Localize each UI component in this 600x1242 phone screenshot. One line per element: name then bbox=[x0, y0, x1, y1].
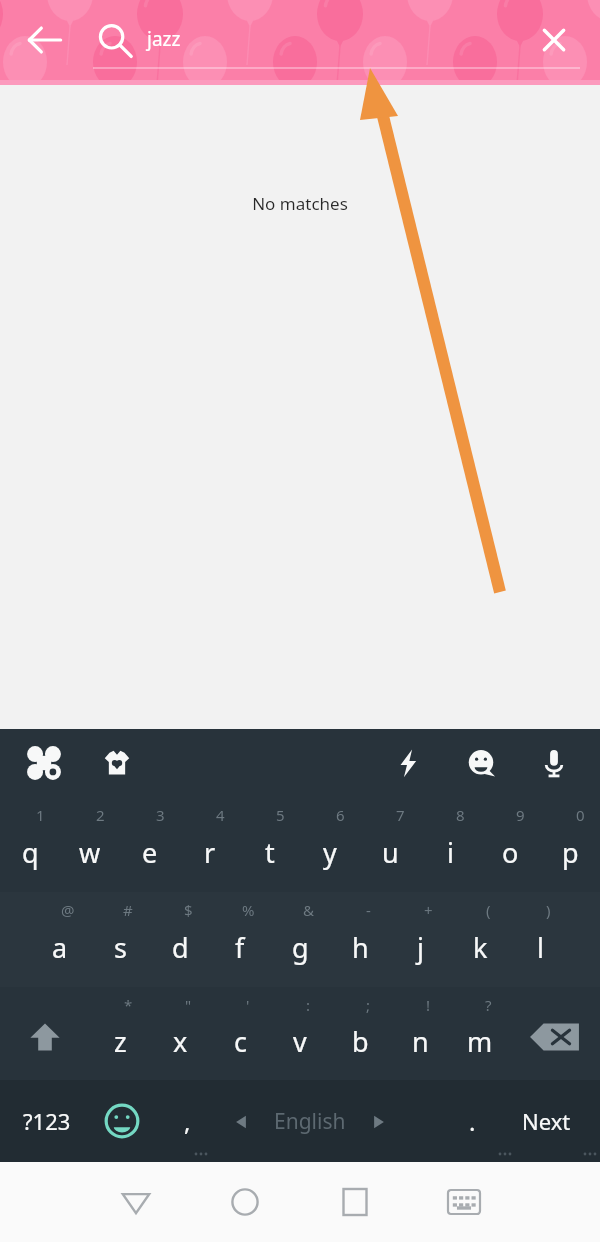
button[interactable]: Emoji bbox=[457, 739, 505, 787]
button[interactable]: Quick actions bbox=[384, 739, 432, 787]
button[interactable]: Recent apps bbox=[327, 1174, 383, 1230]
button[interactable]: ' bbox=[210, 987, 270, 1080]
staticText: @ bbox=[61, 900, 75, 920]
staticText: 1 bbox=[36, 805, 45, 825]
button[interactable]: % bbox=[210, 892, 270, 987]
button[interactable]: ?123 bbox=[4, 1080, 90, 1162]
staticText: - bbox=[366, 900, 371, 920]
staticText: x bbox=[173, 1023, 188, 1060]
button[interactable]: @ bbox=[30, 892, 90, 987]
staticText: 9 bbox=[516, 805, 525, 825]
button[interactable]: Next bbox=[500, 1080, 592, 1162]
button[interactable]: 1 bbox=[0, 797, 60, 892]
button[interactable]: Back bbox=[22, 17, 68, 63]
staticText: 3 bbox=[156, 805, 165, 825]
button[interactable]: Backspace bbox=[510, 987, 600, 1080]
button[interactable]: Hide keyboard bbox=[436, 1174, 492, 1230]
button[interactable]: - bbox=[330, 892, 390, 987]
staticText: 6 bbox=[336, 805, 345, 825]
staticText: 5 bbox=[276, 805, 285, 825]
staticText: k bbox=[473, 929, 488, 966]
button[interactable]: 0 bbox=[540, 797, 600, 892]
staticText: 0 bbox=[576, 805, 585, 825]
button[interactable]: ? bbox=[450, 987, 510, 1080]
button[interactable]: , bbox=[152, 1080, 222, 1162]
button[interactable]: Stickers bbox=[93, 739, 141, 787]
button[interactable]: Shift bbox=[0, 987, 90, 1080]
staticText: n bbox=[412, 1023, 429, 1060]
staticText: 7 bbox=[396, 805, 405, 825]
staticText: a bbox=[52, 929, 68, 966]
staticText: l bbox=[537, 929, 544, 966]
staticText: 8 bbox=[456, 805, 465, 825]
button[interactable]: Home bbox=[217, 1174, 273, 1230]
staticText: f bbox=[235, 929, 245, 966]
button[interactable]: " bbox=[150, 987, 210, 1080]
staticText: i bbox=[447, 834, 454, 871]
staticText: English bbox=[274, 1107, 346, 1136]
button[interactable]: # bbox=[90, 892, 150, 987]
button[interactable]: Clear search bbox=[532, 18, 576, 62]
button[interactable]: ( bbox=[450, 892, 510, 987]
staticText: # bbox=[123, 900, 133, 920]
staticText: 2 bbox=[96, 805, 105, 825]
staticText: ) bbox=[546, 900, 551, 920]
staticText: t bbox=[265, 834, 275, 871]
staticText: * bbox=[124, 995, 133, 1015]
staticText: y bbox=[323, 834, 337, 871]
staticText: ! bbox=[426, 995, 431, 1015]
button[interactable]: 4 bbox=[180, 797, 240, 892]
button[interactable]: ; bbox=[330, 987, 390, 1080]
staticText: : bbox=[306, 995, 311, 1015]
staticText: ?123 bbox=[23, 1106, 71, 1136]
button[interactable]: 9 bbox=[480, 797, 540, 892]
button[interactable]: English bbox=[180, 1080, 440, 1162]
button[interactable]: * bbox=[90, 987, 150, 1080]
staticText: e bbox=[142, 834, 158, 871]
button[interactable]: Voice input bbox=[530, 739, 578, 787]
staticText: o bbox=[502, 834, 519, 871]
button[interactable]: 7 bbox=[360, 797, 420, 892]
staticText: % bbox=[242, 900, 255, 920]
staticText: jazz bbox=[147, 26, 181, 52]
staticText: ? bbox=[485, 995, 492, 1015]
staticText: j bbox=[417, 929, 424, 966]
staticText: d bbox=[172, 929, 189, 966]
button[interactable]: 2 bbox=[60, 797, 120, 892]
staticText: & bbox=[303, 900, 314, 920]
staticText: ; bbox=[366, 995, 371, 1015]
staticText: 4 bbox=[216, 805, 225, 825]
staticText: b bbox=[352, 1023, 369, 1060]
staticText: c bbox=[234, 1023, 247, 1060]
staticText: w bbox=[79, 834, 101, 871]
button[interactable]: 6 bbox=[300, 797, 360, 892]
staticText: " bbox=[185, 995, 192, 1015]
button[interactable]: $ bbox=[150, 892, 210, 987]
staticText: . bbox=[469, 1105, 476, 1138]
staticText: ( bbox=[486, 900, 491, 920]
staticText: No matches bbox=[252, 192, 348, 215]
button[interactable]: : bbox=[270, 987, 330, 1080]
button[interactable]: & bbox=[270, 892, 330, 987]
button[interactable]: 8 bbox=[420, 797, 480, 892]
button[interactable]: ! bbox=[390, 987, 450, 1080]
staticText: m bbox=[467, 1023, 493, 1060]
button[interactable]: . bbox=[444, 1080, 500, 1162]
button[interactable]: 3 bbox=[120, 797, 180, 892]
button[interactable]: ) bbox=[510, 892, 570, 987]
button[interactable]: 5 bbox=[240, 797, 300, 892]
button[interactable]: Back bbox=[108, 1174, 164, 1230]
staticText: r bbox=[204, 834, 216, 871]
staticText: h bbox=[352, 929, 369, 966]
button[interactable]: + bbox=[390, 892, 450, 987]
staticText: z bbox=[114, 1023, 127, 1060]
staticText: p bbox=[562, 834, 579, 871]
staticText: , bbox=[184, 1105, 191, 1138]
staticText: g bbox=[292, 929, 309, 966]
staticText: v bbox=[293, 1023, 307, 1060]
button[interactable]: Emoji keyboard bbox=[92, 1091, 152, 1151]
staticText: s bbox=[114, 929, 127, 966]
staticText: + bbox=[424, 900, 433, 920]
staticText: $ bbox=[184, 900, 193, 920]
button[interactable]: Themes bbox=[20, 739, 68, 787]
